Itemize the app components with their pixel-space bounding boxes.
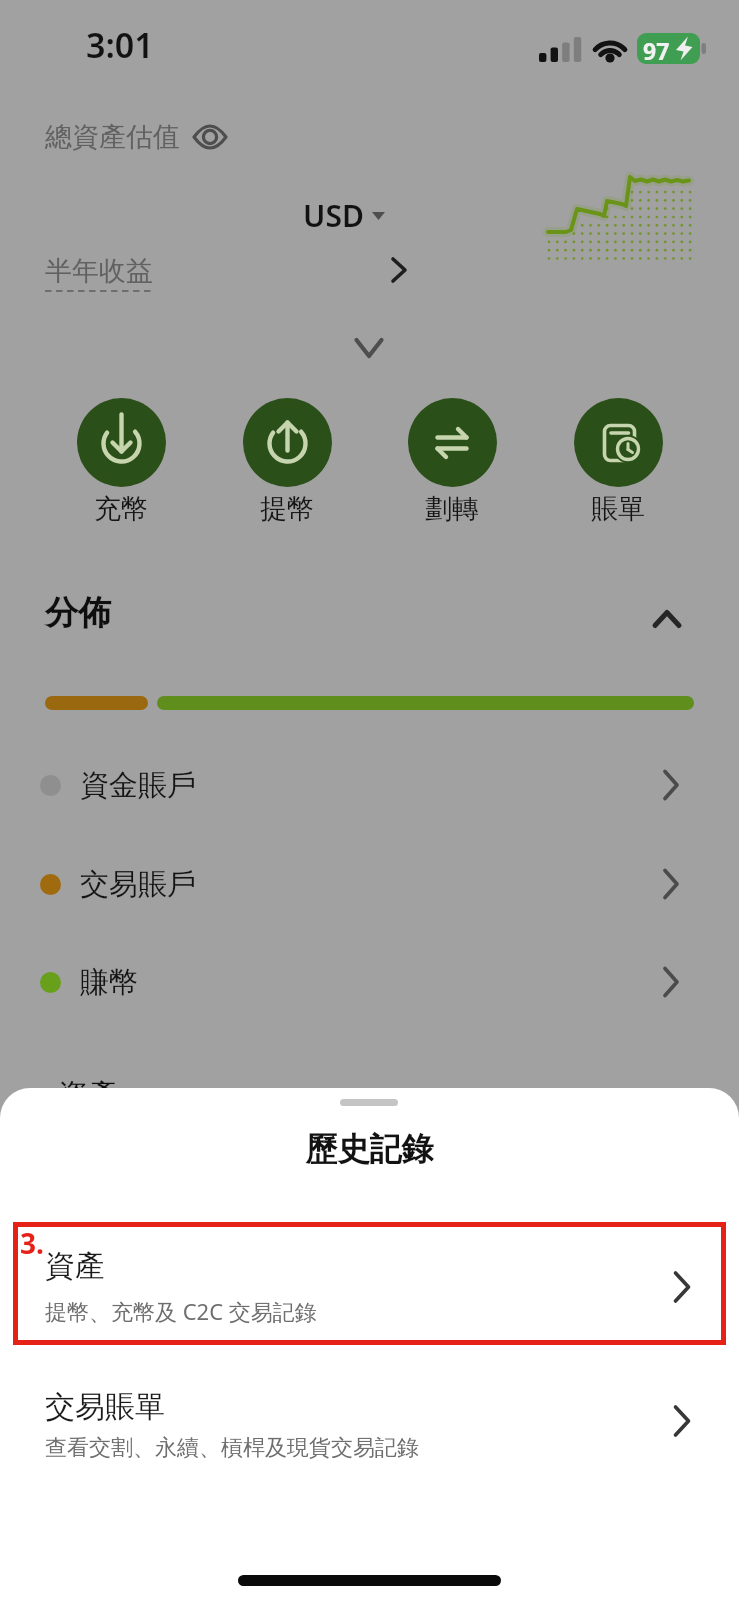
staticText: 3:01 [86, 22, 154, 68]
staticText: 半年收益 [45, 254, 153, 288]
staticText: 總資產估值 [45, 120, 180, 154]
staticText: 劃轉 [425, 492, 479, 526]
staticText: 3. [20, 1224, 44, 1262]
staticText: 交易賬單 [45, 1388, 165, 1426]
button[interactable]: 提幣 [241, 398, 333, 526]
button[interactable]: USD [303, 195, 386, 236]
staticText: 歷史記錄 [0, 1129, 739, 1169]
staticText: 資產 [45, 1247, 105, 1285]
button[interactable]: 資金賬戶 [0, 736, 739, 834]
button[interactable]: 半年收益 [40, 252, 420, 302]
staticText: 充幣 [94, 492, 148, 526]
staticText: 交易賬戶 [80, 866, 196, 903]
button[interactable]: 充幣 [75, 398, 167, 526]
staticText: 97 [643, 35, 670, 66]
staticText: 查看交割、永續、槓桿及現貨交易記錄 [45, 1434, 419, 1462]
button[interactable]: 資產 [0, 1228, 739, 1348]
staticText: 賺幣 [80, 964, 138, 1001]
button[interactable]: 劃轉 [406, 398, 498, 526]
staticText: 資金賬戶 [80, 767, 196, 804]
button[interactable]: 賬單 [572, 398, 664, 526]
button[interactable]: 賺幣 [0, 933, 739, 1031]
button[interactable] [637, 594, 697, 644]
staticText: USD [303, 195, 364, 236]
button[interactable]: 交易賬戶 [0, 835, 739, 933]
staticText: 賬單 [591, 492, 645, 526]
staticText: 提幣、充幣及 C2C 交易記錄 [45, 1296, 317, 1326]
staticText: 資產 [58, 1076, 118, 1114]
staticText: 提幣 [260, 492, 314, 526]
button[interactable]: 交易賬單 [0, 1368, 739, 1488]
staticText: 分佈 [45, 592, 111, 634]
button[interactable]: 總資產估值 [45, 120, 227, 154]
